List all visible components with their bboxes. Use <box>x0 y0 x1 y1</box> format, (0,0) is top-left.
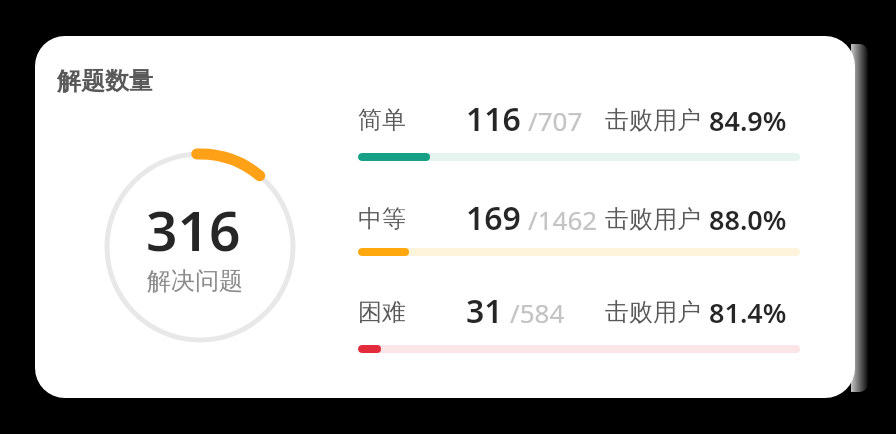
staticText: 击败用户 <box>605 297 701 327</box>
staticText: 88.0% <box>709 201 787 238</box>
staticText: 困难 <box>358 297 406 327</box>
staticText: 31 <box>466 289 503 329</box>
staticText: 简单 <box>358 105 406 135</box>
staticText: 击败用户 <box>605 105 701 135</box>
staticText: 81.4% <box>709 294 787 331</box>
staticText: /1462 <box>528 202 598 237</box>
staticText: 击败用户 <box>605 204 701 234</box>
staticText: 84.9% <box>709 102 787 139</box>
staticText: 解题数量 <box>57 66 153 96</box>
button[interactable]: 解题数量 <box>35 36 855 398</box>
staticText: 316 <box>146 192 241 267</box>
staticText: 中等 <box>358 204 406 234</box>
staticText: /707 <box>528 103 583 138</box>
button[interactable]: 简单 <box>358 100 583 140</box>
button[interactable]: 中等 <box>358 199 598 239</box>
staticText: /584 <box>510 295 565 330</box>
staticText: 解决问题 <box>147 266 243 296</box>
button[interactable]: 困难 <box>358 292 565 332</box>
staticText: 169 <box>466 196 521 236</box>
staticText: 116 <box>466 97 521 137</box>
